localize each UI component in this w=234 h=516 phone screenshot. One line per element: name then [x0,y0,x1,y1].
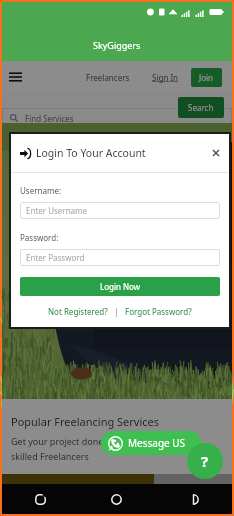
button[interactable]: Back [2,484,78,514]
staticText: Forgot Password? [125,306,192,317]
staticText: Username: [20,185,62,196]
button[interactable]: Recent apps [155,484,232,514]
staticText: Password: [20,232,59,243]
button[interactable]: Menu [2,61,28,93]
staticText: Popular Freelancing Services [11,414,160,429]
button[interactable]: Join [191,68,222,87]
staticText: ? [201,451,209,471]
staticText: Freelancers [86,72,130,83]
button[interactable]: Enter Password [20,249,220,266]
staticText: Login Now [100,281,141,292]
staticText: Enter Password [26,252,85,263]
button[interactable]: Freelancers [83,66,133,89]
button[interactable]: Search [178,97,224,118]
button[interactable]: Close dialog [209,146,223,160]
staticText: Search [188,102,214,113]
staticText: SkyGiggers [93,39,141,51]
staticText: Not Registered? [48,306,108,317]
button[interactable]: Not Registered? [46,304,110,319]
button[interactable]: Home [78,484,155,514]
staticText: skilled Freelancers [11,450,89,462]
button[interactable]: Enter Username [20,202,220,219]
button[interactable]: Sign In [149,66,182,89]
button[interactable]: Forgot Password? [123,304,194,319]
staticText: | [110,306,123,317]
staticText: Message US [128,436,186,450]
staticText: Login To Your Account [36,146,146,160]
staticText: Join [199,72,214,83]
staticText: Enter Username [26,205,88,216]
staticText: Find Services [25,113,74,124]
button[interactable]: Find Services [2,108,232,128]
button[interactable]: Login Now [20,277,220,296]
button[interactable]: Help [187,443,223,479]
staticText: Get your project done by [11,435,116,447]
button[interactable]: Message US [101,431,201,455]
staticText: Sign In [152,72,179,83]
